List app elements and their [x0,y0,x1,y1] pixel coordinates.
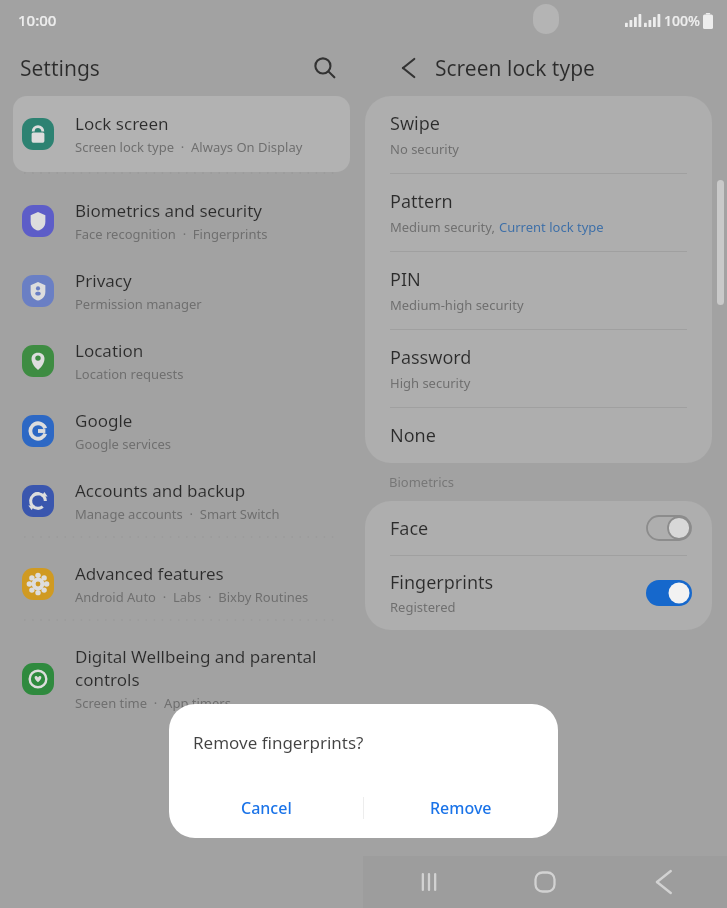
button[interactable]: PIN [365,252,712,329]
staticText: Registered [390,598,456,616]
button[interactable]: Biometrics and security [0,186,363,256]
button[interactable]: Fingerprints [365,556,712,630]
button[interactable]: Privacy [0,256,363,326]
staticText: Google [75,409,133,432]
staticText: Privacy [75,269,132,292]
button[interactable]: Home [523,860,567,904]
staticText: Settings [20,54,100,83]
staticText: Medium security, [390,218,499,236]
staticText: Medium-high security [390,296,524,314]
button[interactable]: Cancel [169,778,363,838]
staticText: 10:00 [18,10,57,30]
staticText: High security [390,374,471,392]
staticText: Accounts and backup [75,479,246,502]
staticText: Fingerprints [390,570,494,595]
staticText: Swipe [390,111,440,136]
staticText: Remove fingerprints? [193,731,364,754]
button[interactable]: Advanced features [0,549,363,619]
staticText: Biometrics and security [75,199,262,222]
staticText: Current lock type [499,218,604,236]
button[interactable]: Password [365,330,712,407]
staticText: None [390,423,436,448]
staticText: 100% [664,11,700,30]
button[interactable]: Back [639,860,683,904]
staticText: Permission manager [75,295,202,313]
staticText: Google services [75,435,171,453]
staticText: Screen lock type [435,54,595,83]
staticText: Face recognition · Fingerprints [75,225,268,243]
staticText: Screen lock type · Always On Display [75,138,303,156]
button[interactable]: Search [307,50,343,86]
button[interactable]: Recent apps [407,860,451,904]
staticText: Password [390,345,472,370]
staticText: Remove [430,797,492,819]
button[interactable]: Location [0,326,363,396]
staticText: Pattern [390,189,453,214]
staticText: Advanced features [75,562,224,585]
staticText: Face [390,516,429,541]
staticText: Lock screen [75,112,169,135]
button[interactable]: Pattern [365,174,712,251]
button[interactable]: Lock screen [13,96,350,172]
button[interactable]: Google [0,396,363,466]
staticText: Screen time · App timers [75,694,231,712]
staticText: Cancel [241,797,292,819]
button[interactable]: Accounts and backup [0,466,363,536]
button[interactable]: None [365,408,712,463]
button[interactable]: Remove [364,778,558,838]
button[interactable]: Back [389,51,423,85]
staticText: Biometrics [389,473,455,491]
button[interactable]: Face [365,501,712,555]
button[interactable]: Swipe [365,96,712,173]
staticText: Android Auto · Labs · Bixby Routines [75,588,309,606]
staticText: Digital Wellbeing and parental controls [75,645,317,691]
button[interactable]: Lock screen [13,96,350,172]
staticText: No security [390,140,460,158]
button[interactable]: Digital Wellbeing and parental controls [0,632,363,725]
staticText: Location requests [75,365,184,383]
staticText: Manage accounts · Smart Switch [75,505,280,523]
staticText: PIN [390,267,421,292]
staticText: Location [75,339,144,362]
